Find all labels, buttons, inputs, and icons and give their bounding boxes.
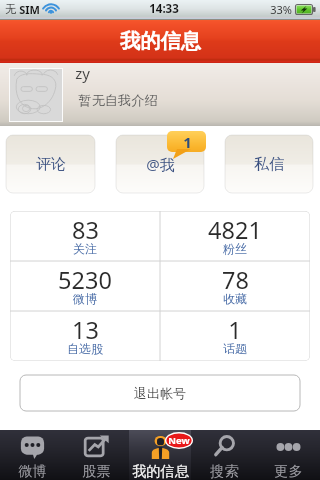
button[interactable]: 私信 [225,135,313,193]
staticText: zy [75,63,90,83]
staticText: @我 [146,154,175,174]
staticText: 更多 [274,462,303,480]
staticText: 微博 [73,291,97,306]
button[interactable]: 13 [10,311,160,361]
staticText: 我的信息 [120,29,201,54]
button[interactable]: 搜索 [192,430,256,480]
staticText: New [168,434,190,447]
button[interactable]: @我 [116,135,204,193]
button[interactable]: 5230 [10,261,160,311]
staticText: 78 [222,264,249,296]
button[interactable]: 1 [160,311,310,361]
staticText: 无 [5,2,16,16]
staticText: 话题 [223,341,247,356]
button[interactable]: 78 [160,261,310,311]
button[interactable]: 评论 [6,135,95,193]
button[interactable]: 退出帐号 [20,375,300,411]
staticText: 暂无自我介绍 [78,92,158,109]
staticText: 1 [228,314,242,346]
staticText: 4821 [208,214,262,246]
button[interactable]: 4821 [160,211,310,261]
staticText: 退出帐号 [134,385,186,401]
staticText: 股票 [82,462,111,480]
staticText: 搜索 [210,462,239,480]
staticText: 我的信息 [132,462,189,480]
staticText: 评论 [36,155,66,174]
button[interactable]: 股票 [64,430,128,480]
button[interactable]: 微博 [0,430,64,480]
button[interactable]: 我的信息 [129,430,191,480]
staticText: 收藏 [223,291,247,306]
staticText: SIM [19,2,40,17]
button[interactable]: 83 [10,211,160,261]
staticText: 私信 [254,155,284,174]
button[interactable]: 更多 [256,430,320,480]
staticText: 5230 [58,264,112,296]
staticText: 微博 [18,462,47,480]
staticText: 83 [72,214,99,246]
staticText: 粉丝 [223,241,247,256]
staticText: 关注 [73,241,97,256]
staticText: 13 [72,314,99,346]
staticText: 1 [183,132,192,152]
staticText: 自选股 [67,341,103,356]
staticText: 33% [270,2,292,17]
staticText: 14:33 [149,1,179,17]
